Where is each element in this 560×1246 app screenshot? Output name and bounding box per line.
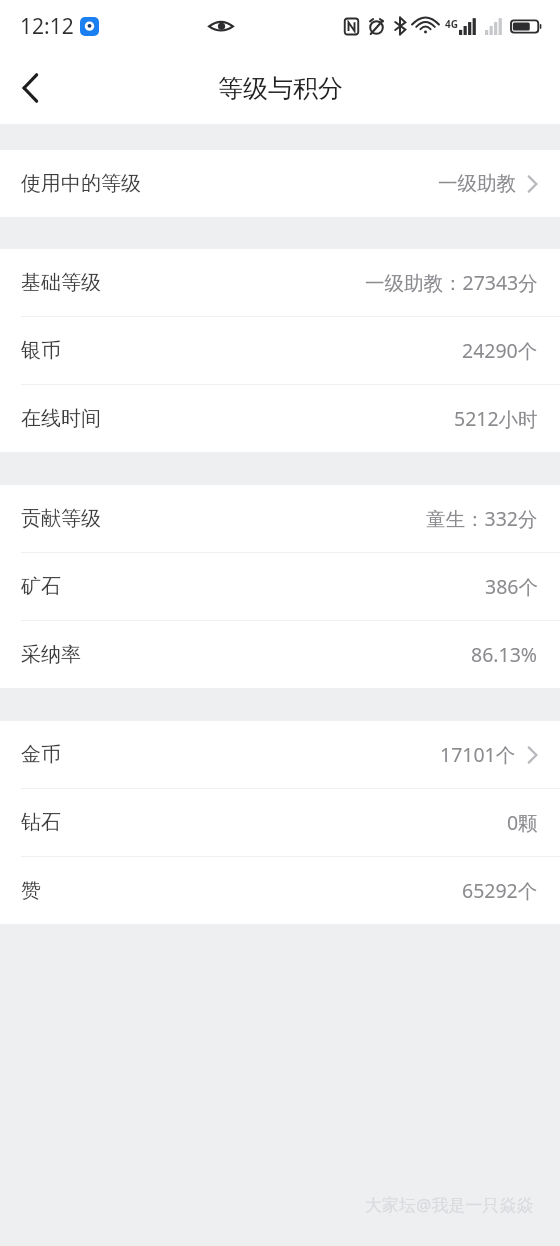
button[interactable]: 金币 — [0, 721, 560, 789]
staticText: 5212小时 — [454, 405, 538, 432]
button[interactable]: Back — [0, 58, 60, 118]
staticText: 一级助教：27343分 — [365, 269, 538, 296]
staticText: 钻石 — [21, 810, 61, 835]
staticText: 86.13% — [471, 641, 538, 668]
staticText: 贡献等级 — [21, 506, 101, 531]
staticText: 银币 — [21, 338, 61, 363]
button[interactable]: 在线时间 — [0, 385, 560, 452]
staticText: 童生：332分 — [426, 505, 538, 532]
staticText: 一级助教 — [438, 171, 516, 196]
staticText: 386个 — [485, 573, 538, 600]
staticText: 17101个 — [440, 741, 516, 768]
button[interactable]: 银币 — [0, 317, 560, 385]
staticText: 金币 — [21, 742, 61, 767]
staticText: 12:12 — [20, 12, 74, 41]
button[interactable]: 使用中的等级 — [0, 150, 560, 217]
staticText: 使用中的等级 — [21, 171, 141, 196]
staticText: 等级与积分 — [218, 73, 343, 104]
staticText: 0颗 — [507, 809, 538, 836]
staticText: 基础等级 — [21, 270, 101, 295]
button[interactable]: 矿石 — [0, 553, 560, 621]
button[interactable]: 基础等级 — [0, 249, 560, 317]
staticText: 4G — [445, 17, 458, 31]
button[interactable]: 采纳率 — [0, 621, 560, 688]
staticText: 矿石 — [21, 574, 61, 599]
staticText: 在线时间 — [21, 406, 101, 431]
button[interactable]: 赞 — [0, 857, 560, 924]
staticText: 大家坛@我是一只焱焱 — [365, 1193, 534, 1216]
staticText: 赞 — [21, 878, 41, 903]
button[interactable]: 钻石 — [0, 789, 560, 857]
button[interactable]: 贡献等级 — [0, 485, 560, 553]
staticText: 采纳率 — [21, 642, 81, 667]
staticText: 24290个 — [462, 337, 538, 364]
staticText: 65292个 — [462, 877, 538, 904]
